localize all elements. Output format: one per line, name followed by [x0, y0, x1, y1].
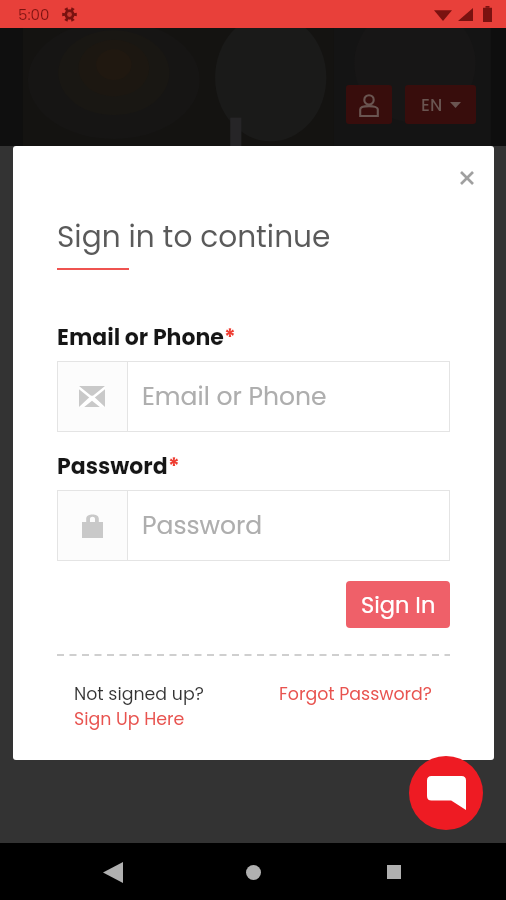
staticText: EN	[421, 93, 443, 117]
button[interactable]: Recents	[366, 844, 422, 900]
staticText: Password	[57, 451, 168, 482]
staticText: Sign In	[361, 589, 436, 620]
staticText: Sign Up Here	[74, 707, 185, 731]
button[interactable]: Back	[85, 844, 141, 900]
button[interactable]: Sign In	[346, 581, 450, 628]
staticText: Not signed up?	[74, 682, 204, 706]
button[interactable]: Not signed up?	[74, 682, 204, 731]
staticText: Password	[142, 508, 263, 543]
button[interactable]: Password	[57, 490, 450, 561]
staticText: Sign in to continue	[57, 216, 331, 257]
staticText: Email or Phone	[57, 322, 224, 353]
button[interactable]: Home	[225, 844, 281, 900]
staticText: *	[224, 322, 236, 353]
button[interactable]: Account	[346, 85, 392, 124]
button[interactable]: Chat	[409, 756, 483, 830]
button[interactable]: Email or Phone	[57, 361, 450, 432]
button[interactable]: EN	[405, 85, 476, 124]
staticText: 5:00	[18, 4, 50, 25]
staticText: Email or Phone	[142, 379, 327, 414]
staticText: *	[168, 451, 180, 482]
button[interactable]: Forgot Password?	[279, 682, 432, 706]
button[interactable]: Close	[449, 160, 485, 196]
